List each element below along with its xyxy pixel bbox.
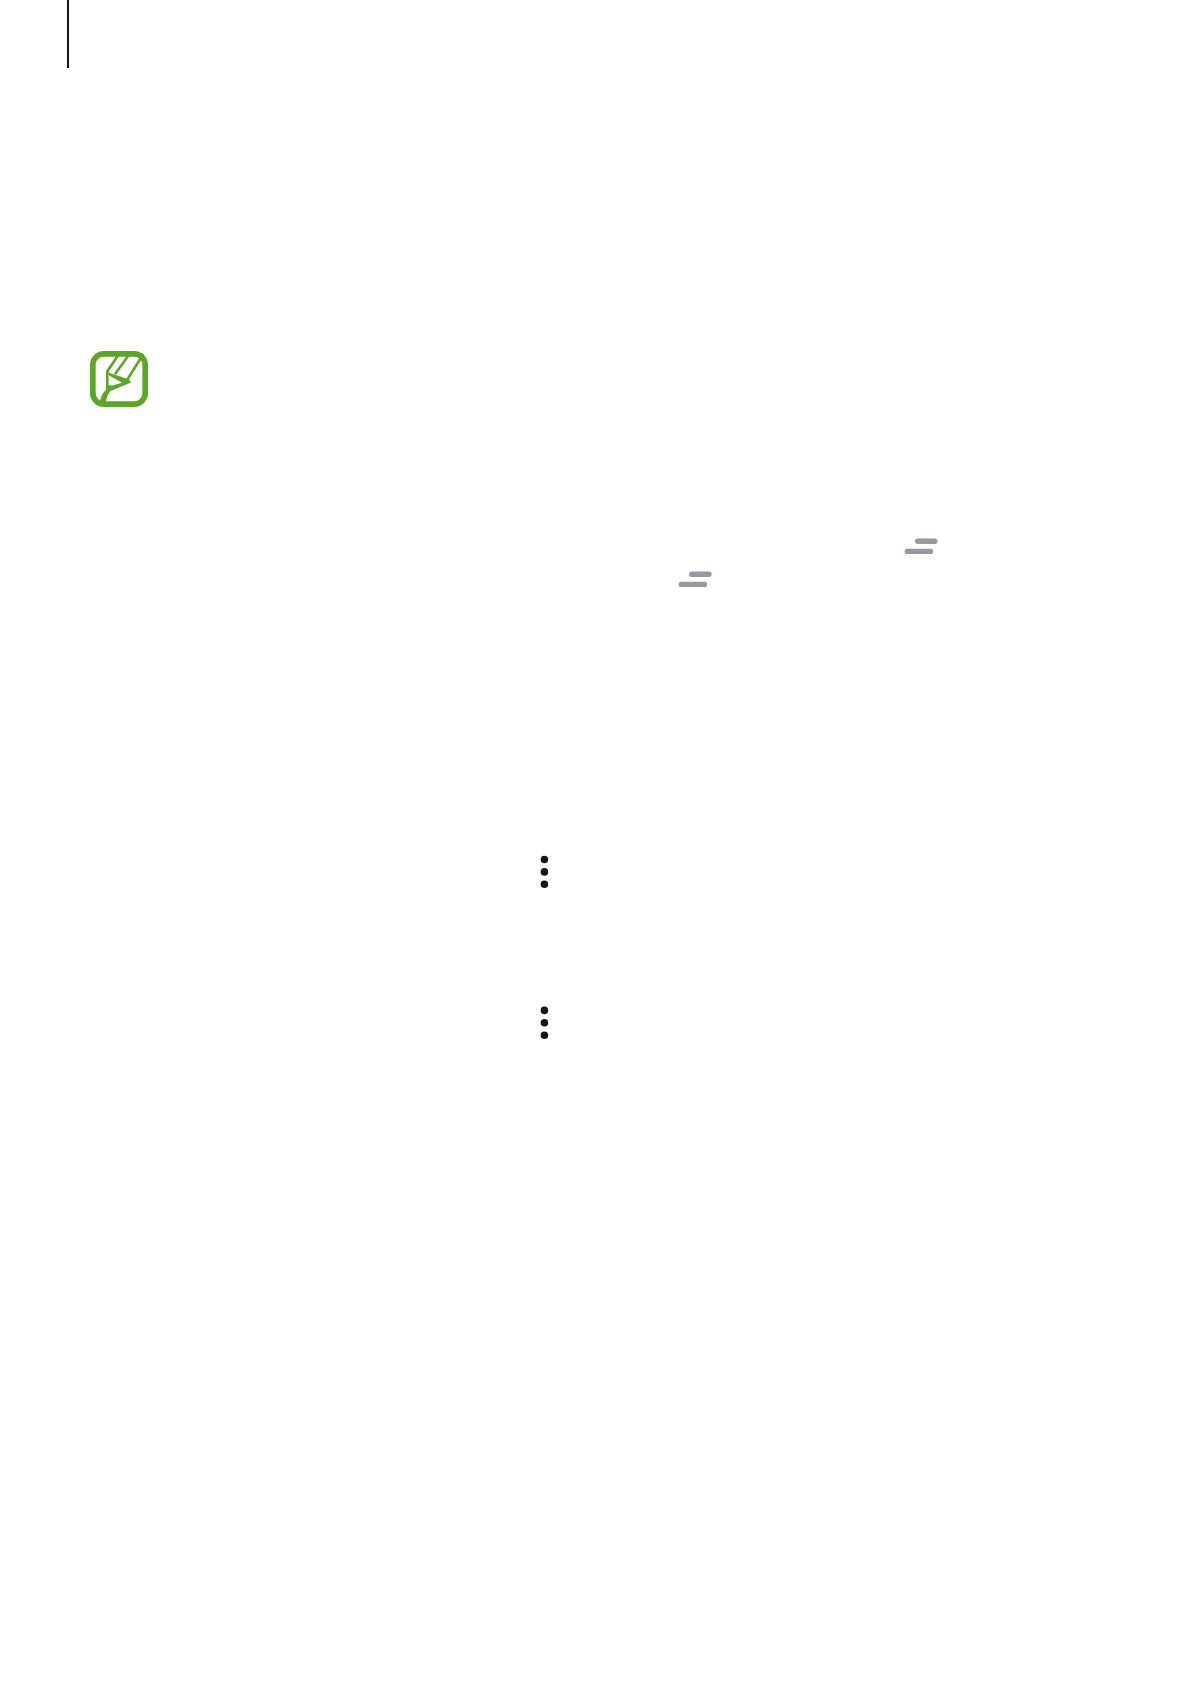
button[interactable]: Samsung Notes	[90, 351, 148, 407]
button[interactable]: More options	[538, 1004, 551, 1042]
button[interactable]: More options	[538, 853, 551, 891]
